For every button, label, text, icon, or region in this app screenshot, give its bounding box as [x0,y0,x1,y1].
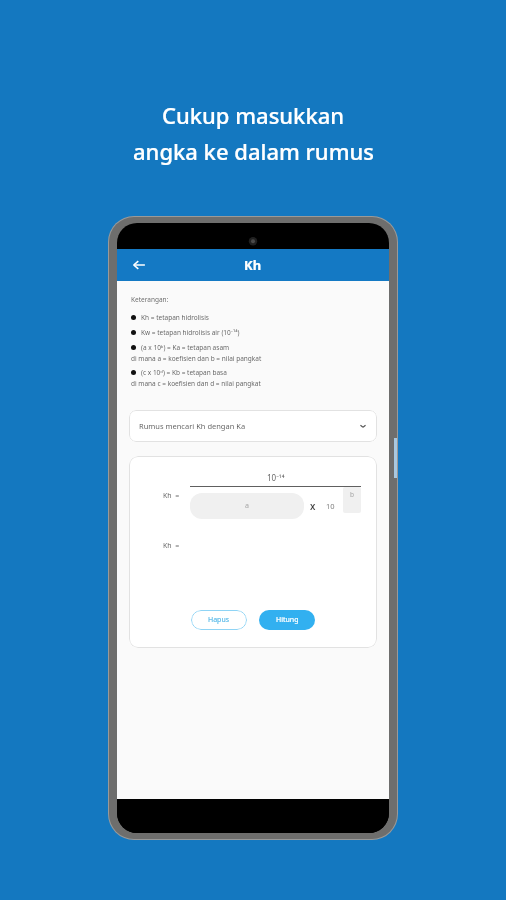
staticText: Rumus mencari Kh dengan Ka [139,421,246,431]
staticText: (a x 10ᵇ) = Ka = tetapan asam [141,343,230,352]
button[interactable]: Back [125,251,153,279]
button[interactable]: Rumus mencari Kh dengan Ka [129,410,377,442]
staticText: Keterangan: [131,295,169,304]
staticText: X [310,501,316,512]
staticText: Hapus [208,615,230,625]
staticText: Kh [244,256,262,274]
button[interactable]: b [343,487,361,513]
staticText: 10⁻¹⁴ [267,472,285,483]
staticText: di mana c = koefisien dan d = nilai pang… [131,379,261,388]
staticText: Cukup masukkan [162,100,345,130]
button[interactable]: Hitung [259,610,315,630]
staticText: b [350,490,354,499]
staticText: 10 [326,501,335,511]
staticText: a [245,501,249,511]
staticText: angka ke dalam rumus [133,136,374,166]
staticText: Kh = tetapan hidrolisis [141,313,209,322]
staticText: Hitung [276,615,299,625]
staticText: Kh = [163,491,180,501]
staticText: Kh = [163,541,180,551]
staticText: Kw = tetapan hidrolisis air (10⁻¹⁴) [141,328,240,337]
staticText: (c x 10ᵈ) = Kb = tetapan basa [141,368,227,377]
button[interactable]: Hapus [191,610,247,630]
button[interactable]: a [190,493,304,519]
staticText: di mana a = koefisien dan b = nilai pang… [131,354,262,363]
